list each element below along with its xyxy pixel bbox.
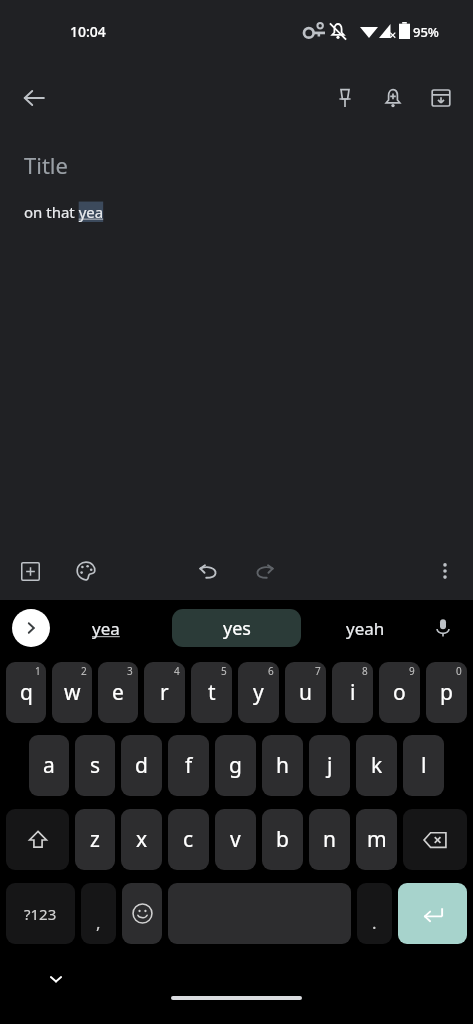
button[interactable]: n — [309, 809, 350, 870]
staticText: 8 — [362, 664, 368, 678]
staticText: k — [371, 751, 383, 780]
staticText: 2 — [81, 664, 87, 678]
staticText: p — [440, 678, 453, 707]
staticText: d — [135, 751, 148, 780]
staticText: 0 — [456, 664, 462, 678]
button[interactable]: yeah — [325, 608, 405, 648]
staticText: 10:04 — [70, 22, 106, 41]
staticText: , — [96, 911, 101, 934]
button[interactable]: z — [75, 809, 115, 870]
staticText: 5 — [221, 664, 227, 678]
button[interactable]: f — [168, 735, 209, 796]
button[interactable]: Pin — [321, 74, 369, 122]
staticText: 7 — [315, 664, 321, 678]
staticText: s — [90, 751, 101, 780]
staticText: f — [185, 751, 193, 780]
staticText: w — [64, 678, 81, 707]
button[interactable]: Undo — [185, 549, 229, 593]
staticText: on that yea — [24, 202, 104, 222]
button[interactable]: j — [309, 735, 350, 796]
button[interactable]: r — [144, 662, 185, 723]
button[interactable]: p — [426, 662, 467, 723]
button[interactable]: Comma — [81, 883, 116, 944]
staticText: l — [421, 751, 427, 780]
button[interactable]: Hide keyboard — [34, 957, 78, 1001]
button[interactable]: u — [285, 662, 326, 723]
button[interactable]: Title — [24, 150, 449, 180]
staticText: i — [350, 678, 356, 707]
button[interactable]: Voice input — [421, 606, 465, 650]
staticText: ?123 — [24, 904, 57, 924]
button[interactable]: Period — [357, 883, 392, 944]
button[interactable]: Shift — [6, 809, 69, 870]
button[interactable]: k — [356, 735, 397, 796]
button[interactable]: Back — [12, 76, 56, 120]
button[interactable]: Change color — [64, 549, 108, 593]
button[interactable]: Space — [168, 883, 351, 944]
staticText: a — [43, 751, 55, 780]
staticText: 3 — [127, 664, 133, 678]
staticText: 1 — [35, 664, 41, 678]
button[interactable]: Enter — [398, 883, 467, 944]
button[interactable]: on that yea — [24, 202, 449, 222]
button[interactable]: v — [215, 809, 256, 870]
staticText: v — [230, 825, 241, 854]
staticText: m — [367, 825, 387, 854]
button[interactable]: d — [121, 735, 162, 796]
staticText: yea — [92, 617, 120, 640]
button[interactable]: y — [238, 662, 279, 723]
staticText: q — [20, 678, 33, 707]
button[interactable]: l — [403, 735, 444, 796]
button[interactable]: i — [332, 662, 373, 723]
staticText: b — [276, 825, 289, 854]
button[interactable]: e — [98, 662, 138, 723]
button[interactable]: h — [262, 735, 303, 796]
button[interactable]: Emoji — [122, 883, 162, 944]
staticText: x — [136, 825, 148, 854]
staticText: n — [323, 825, 336, 854]
button[interactable]: c — [168, 809, 209, 870]
staticText: e — [112, 678, 124, 707]
staticText: . — [372, 911, 377, 934]
button[interactable]: yea — [72, 608, 140, 648]
staticText: u — [299, 678, 312, 707]
staticText: z — [90, 825, 100, 854]
staticText: c — [183, 825, 194, 854]
button[interactable]: Expand toolbar — [12, 609, 50, 647]
button[interactable]: yes — [172, 609, 301, 647]
staticText: Title — [24, 150, 68, 180]
staticText: yeah — [346, 617, 385, 640]
staticText: o — [393, 678, 406, 707]
button[interactable]: x — [121, 809, 162, 870]
staticText: j — [327, 751, 333, 780]
button[interactable]: ?123 — [6, 883, 75, 944]
staticText: 95% — [413, 23, 439, 41]
staticText: 4 — [174, 664, 180, 678]
staticText: yes — [223, 616, 251, 641]
button[interactable]: o — [379, 662, 420, 723]
button[interactable]: s — [75, 735, 115, 796]
button[interactable]: w — [52, 662, 92, 723]
staticText: r — [160, 678, 169, 707]
staticText: g — [229, 751, 242, 780]
button[interactable]: Add reminder — [369, 74, 417, 122]
button[interactable]: q — [6, 662, 46, 723]
button[interactable]: a — [29, 735, 69, 796]
button[interactable]: b — [262, 809, 303, 870]
staticText: t — [208, 678, 216, 707]
staticText: h — [276, 751, 289, 780]
button[interactable]: More options — [423, 549, 467, 593]
button[interactable]: Archive — [417, 74, 465, 122]
button[interactable]: g — [215, 735, 256, 796]
staticText: 9 — [409, 664, 415, 678]
button[interactable]: Redo — [243, 549, 287, 593]
button[interactable]: Add — [8, 549, 52, 593]
staticText: y — [253, 678, 264, 707]
button[interactable]: t — [191, 662, 232, 723]
button[interactable]: m — [356, 809, 397, 870]
staticText: 6 — [268, 664, 274, 678]
button[interactable]: Backspace — [403, 809, 467, 870]
